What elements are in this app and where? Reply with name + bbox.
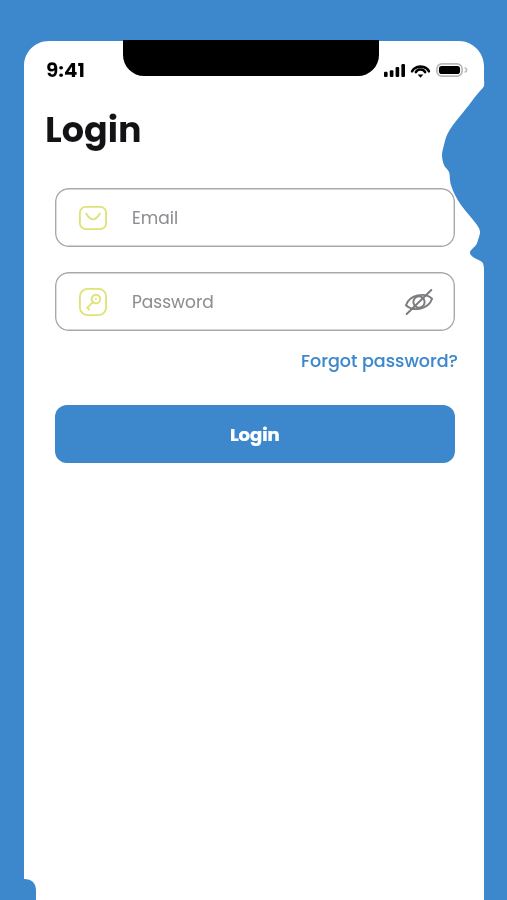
staticText: Password bbox=[132, 290, 214, 314]
button[interactable]: Login bbox=[55, 405, 455, 463]
staticText: Login bbox=[230, 422, 280, 447]
button[interactable]: Email bbox=[55, 188, 455, 247]
staticText: Email bbox=[132, 206, 179, 230]
button[interactable]: Forgot password? bbox=[301, 349, 459, 374]
staticText: 9:41 bbox=[46, 56, 86, 84]
staticText: Login bbox=[45, 105, 142, 154]
button[interactable]: Show password bbox=[401, 284, 437, 320]
button[interactable]: Password bbox=[55, 272, 455, 331]
